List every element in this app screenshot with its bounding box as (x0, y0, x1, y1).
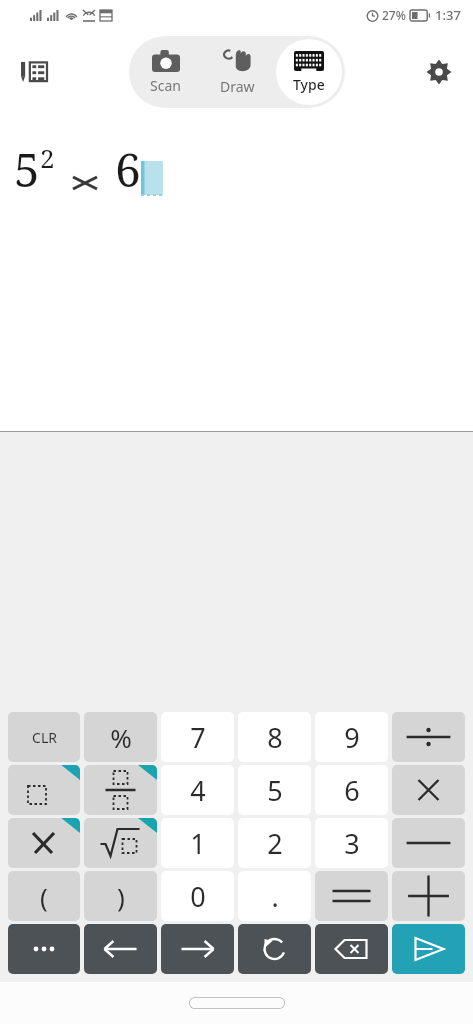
staticText: 3 (344, 825, 360, 862)
staticText: 6 (344, 772, 360, 809)
staticText: % (110, 720, 132, 755)
button[interactable]: Scan (132, 39, 198, 105)
button[interactable]: Type (276, 39, 342, 105)
staticText: 2 (267, 825, 283, 862)
button[interactable]: 5 (238, 765, 311, 815)
button[interactable]: 2 (238, 818, 311, 868)
button[interactable]: 4 (161, 765, 234, 815)
staticText: 9 (344, 719, 360, 756)
staticText: CLR (32, 728, 57, 747)
staticText: 4 (190, 772, 206, 809)
button[interactable]: Equals (315, 871, 388, 921)
staticText: 5 (267, 772, 283, 809)
staticText: 8 (267, 719, 283, 756)
staticText: 7 (190, 719, 206, 756)
staticText: Type (293, 75, 325, 94)
staticText: Scan (150, 76, 181, 95)
staticText: . (271, 878, 279, 915)
button[interactable]: CLR (8, 712, 80, 762)
button[interactable]: 8 (238, 712, 311, 762)
staticText: 2 (40, 140, 55, 175)
button[interactable]: Undo (238, 924, 311, 974)
button[interactable]: 6 (315, 765, 388, 815)
button[interactable]: Multiply (392, 765, 465, 815)
staticText: ( (40, 879, 48, 914)
button[interactable]: % (84, 712, 157, 762)
staticText: 0 (190, 878, 206, 915)
button[interactable]: ) (84, 871, 157, 921)
button[interactable]: 9 (315, 712, 388, 762)
button[interactable]: Square root (84, 818, 157, 868)
staticText: 27% (382, 7, 406, 23)
staticText: 6 (115, 138, 141, 201)
button[interactable]: Right (161, 924, 234, 974)
button[interactable]: Plus (392, 871, 465, 921)
button[interactable]: 0 (161, 871, 234, 921)
button[interactable]: Minus (392, 818, 465, 868)
button[interactable]: Fraction (84, 765, 157, 815)
button[interactable]: 7 (161, 712, 234, 762)
staticText: 1:37 (435, 6, 461, 24)
button[interactable]: Divide (392, 712, 465, 762)
button[interactable]: Draw (204, 39, 270, 105)
button[interactable]: ( (8, 871, 80, 921)
button[interactable]: Square (8, 765, 80, 815)
button[interactable]: Left (84, 924, 157, 974)
button[interactable]: . (238, 871, 311, 921)
button[interactable]: Variable x (8, 818, 80, 868)
button[interactable]: Submit (392, 924, 465, 974)
button[interactable]: Settings (417, 50, 461, 94)
button[interactable]: 1 (161, 818, 234, 868)
staticText: 5 (14, 138, 40, 201)
button[interactable]: 3 (315, 818, 388, 868)
button[interactable]: Backspace (315, 924, 388, 974)
button[interactable]: History (12, 50, 56, 94)
button[interactable]: More (8, 924, 80, 974)
staticText: ) (117, 879, 125, 914)
staticText: 1 (190, 825, 206, 862)
staticText: Draw (220, 77, 255, 96)
